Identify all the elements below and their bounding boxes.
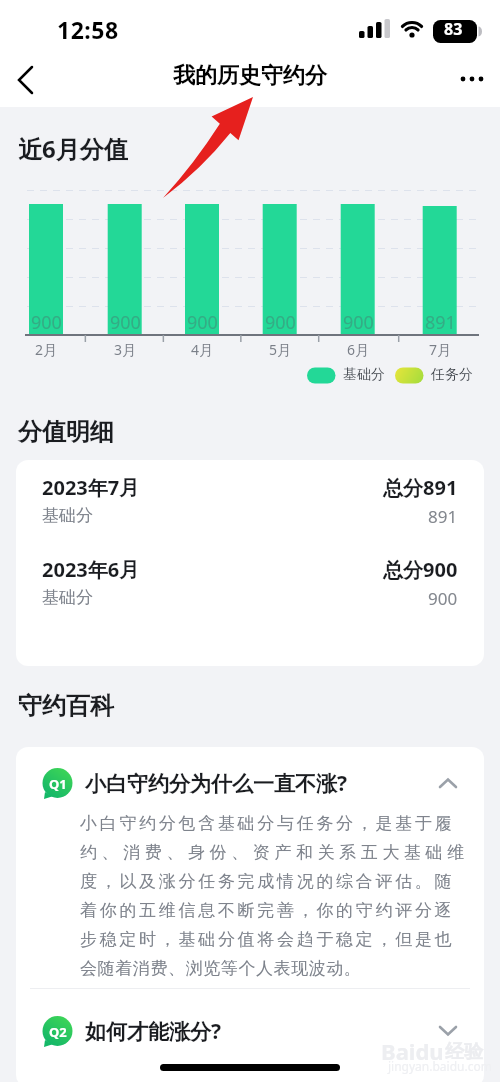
staticText: 总分891 <box>383 474 458 501</box>
staticText: 会随着消费、浏览等个人表现波动。 <box>80 958 362 979</box>
staticText: Q2 <box>49 1023 67 1041</box>
staticText: 分值明细 <box>18 417 114 447</box>
staticText: Baidu <box>381 1036 444 1066</box>
staticText: 着你的五维信息不断完善，你的守约评分逐 <box>80 900 455 921</box>
staticText: 2023年6月 <box>42 556 140 583</box>
staticText: jingyan.baidu.com <box>388 1058 492 1074</box>
button[interactable]: 2023年6月 <box>16 556 484 610</box>
staticText: Q1 <box>49 775 67 793</box>
staticText: 900 <box>187 310 218 335</box>
staticText: 如何才能涨分? <box>85 1017 222 1046</box>
staticText: 经验 <box>445 1040 483 1064</box>
staticText: 步稳定时，基础分值将会趋于稳定，但是也 <box>80 929 455 950</box>
staticText: 我的历史守约分 <box>173 62 327 90</box>
staticText: 度，以及涨分任务完成情况的综合评估。随 <box>80 871 455 892</box>
staticText: 守约百科 <box>18 691 114 721</box>
button[interactable]: Q2 <box>16 1009 484 1053</box>
button[interactable]: 2023年7月 <box>16 474 484 528</box>
staticText: 任务分 <box>431 366 473 384</box>
staticText: 900 <box>31 310 62 335</box>
staticText: 900 <box>428 587 458 610</box>
button[interactable]: Q1 <box>16 761 484 805</box>
staticText: 5月 <box>269 340 292 359</box>
staticText: 900 <box>110 310 141 335</box>
staticText: 小白守约分为什么一直不涨? <box>85 769 348 798</box>
staticText: 3月 <box>114 340 137 359</box>
button[interactable] <box>8 60 48 100</box>
staticText: 900 <box>343 310 374 335</box>
staticText: 7月 <box>429 340 452 359</box>
staticText: 2月 <box>35 340 58 359</box>
staticText: 约、消费、身份、资产和关系五大基础维 <box>80 842 469 863</box>
staticText: 4月 <box>191 340 214 359</box>
staticText: 900 <box>265 310 296 335</box>
staticText: 6月 <box>347 340 370 359</box>
staticText: 总分900 <box>383 556 458 583</box>
staticText: 2023年7月 <box>42 474 140 501</box>
staticText: 12:58 <box>57 14 119 45</box>
staticText: 基础分 <box>42 587 93 608</box>
staticText: 近6月分值 <box>18 132 128 165</box>
button[interactable] <box>452 62 492 96</box>
staticText: 891 <box>425 310 456 335</box>
staticText: 891 <box>428 505 458 528</box>
staticText: 83 <box>444 18 463 40</box>
staticText: 基础分 <box>42 505 93 526</box>
staticText: 基础分 <box>343 366 385 384</box>
staticText: 小白守约分包含基础分与任务分，是基于履 <box>80 813 455 834</box>
